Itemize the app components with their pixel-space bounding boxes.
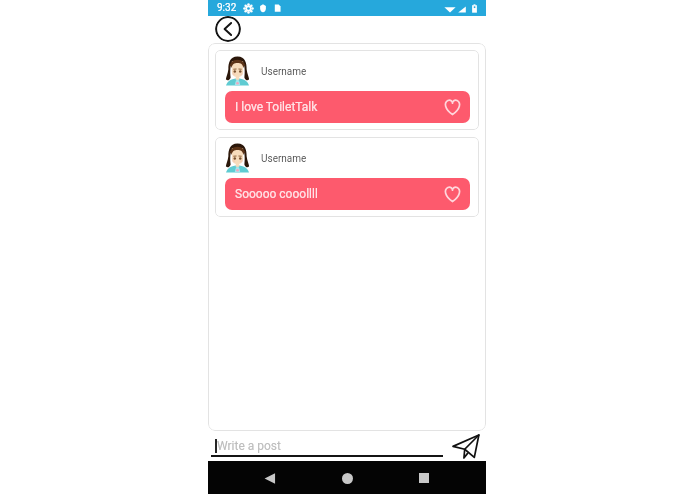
button[interactable]: Back (215, 16, 241, 42)
button[interactable]: Back (257, 464, 285, 492)
staticText: Username (261, 66, 307, 78)
staticText: Username (261, 153, 307, 165)
button[interactable]: Like (441, 96, 463, 118)
staticText: I love ToiletTalk (235, 100, 318, 114)
button[interactable]: Write a post (211, 434, 443, 457)
button[interactable]: Username (215, 50, 479, 130)
button[interactable]: I love ToiletTalk (225, 91, 470, 123)
button[interactable]: Like (441, 183, 463, 205)
button[interactable]: Username (215, 137, 479, 217)
button[interactable]: Recents (410, 464, 438, 492)
staticText: Sooooo cooollll (235, 187, 318, 201)
button[interactable]: Send (448, 430, 484, 461)
button[interactable]: Sooooo cooollll (225, 178, 470, 210)
button[interactable]: Home (333, 464, 361, 492)
staticText: 9:32 (217, 2, 237, 14)
staticText: Write a post (217, 439, 281, 453)
